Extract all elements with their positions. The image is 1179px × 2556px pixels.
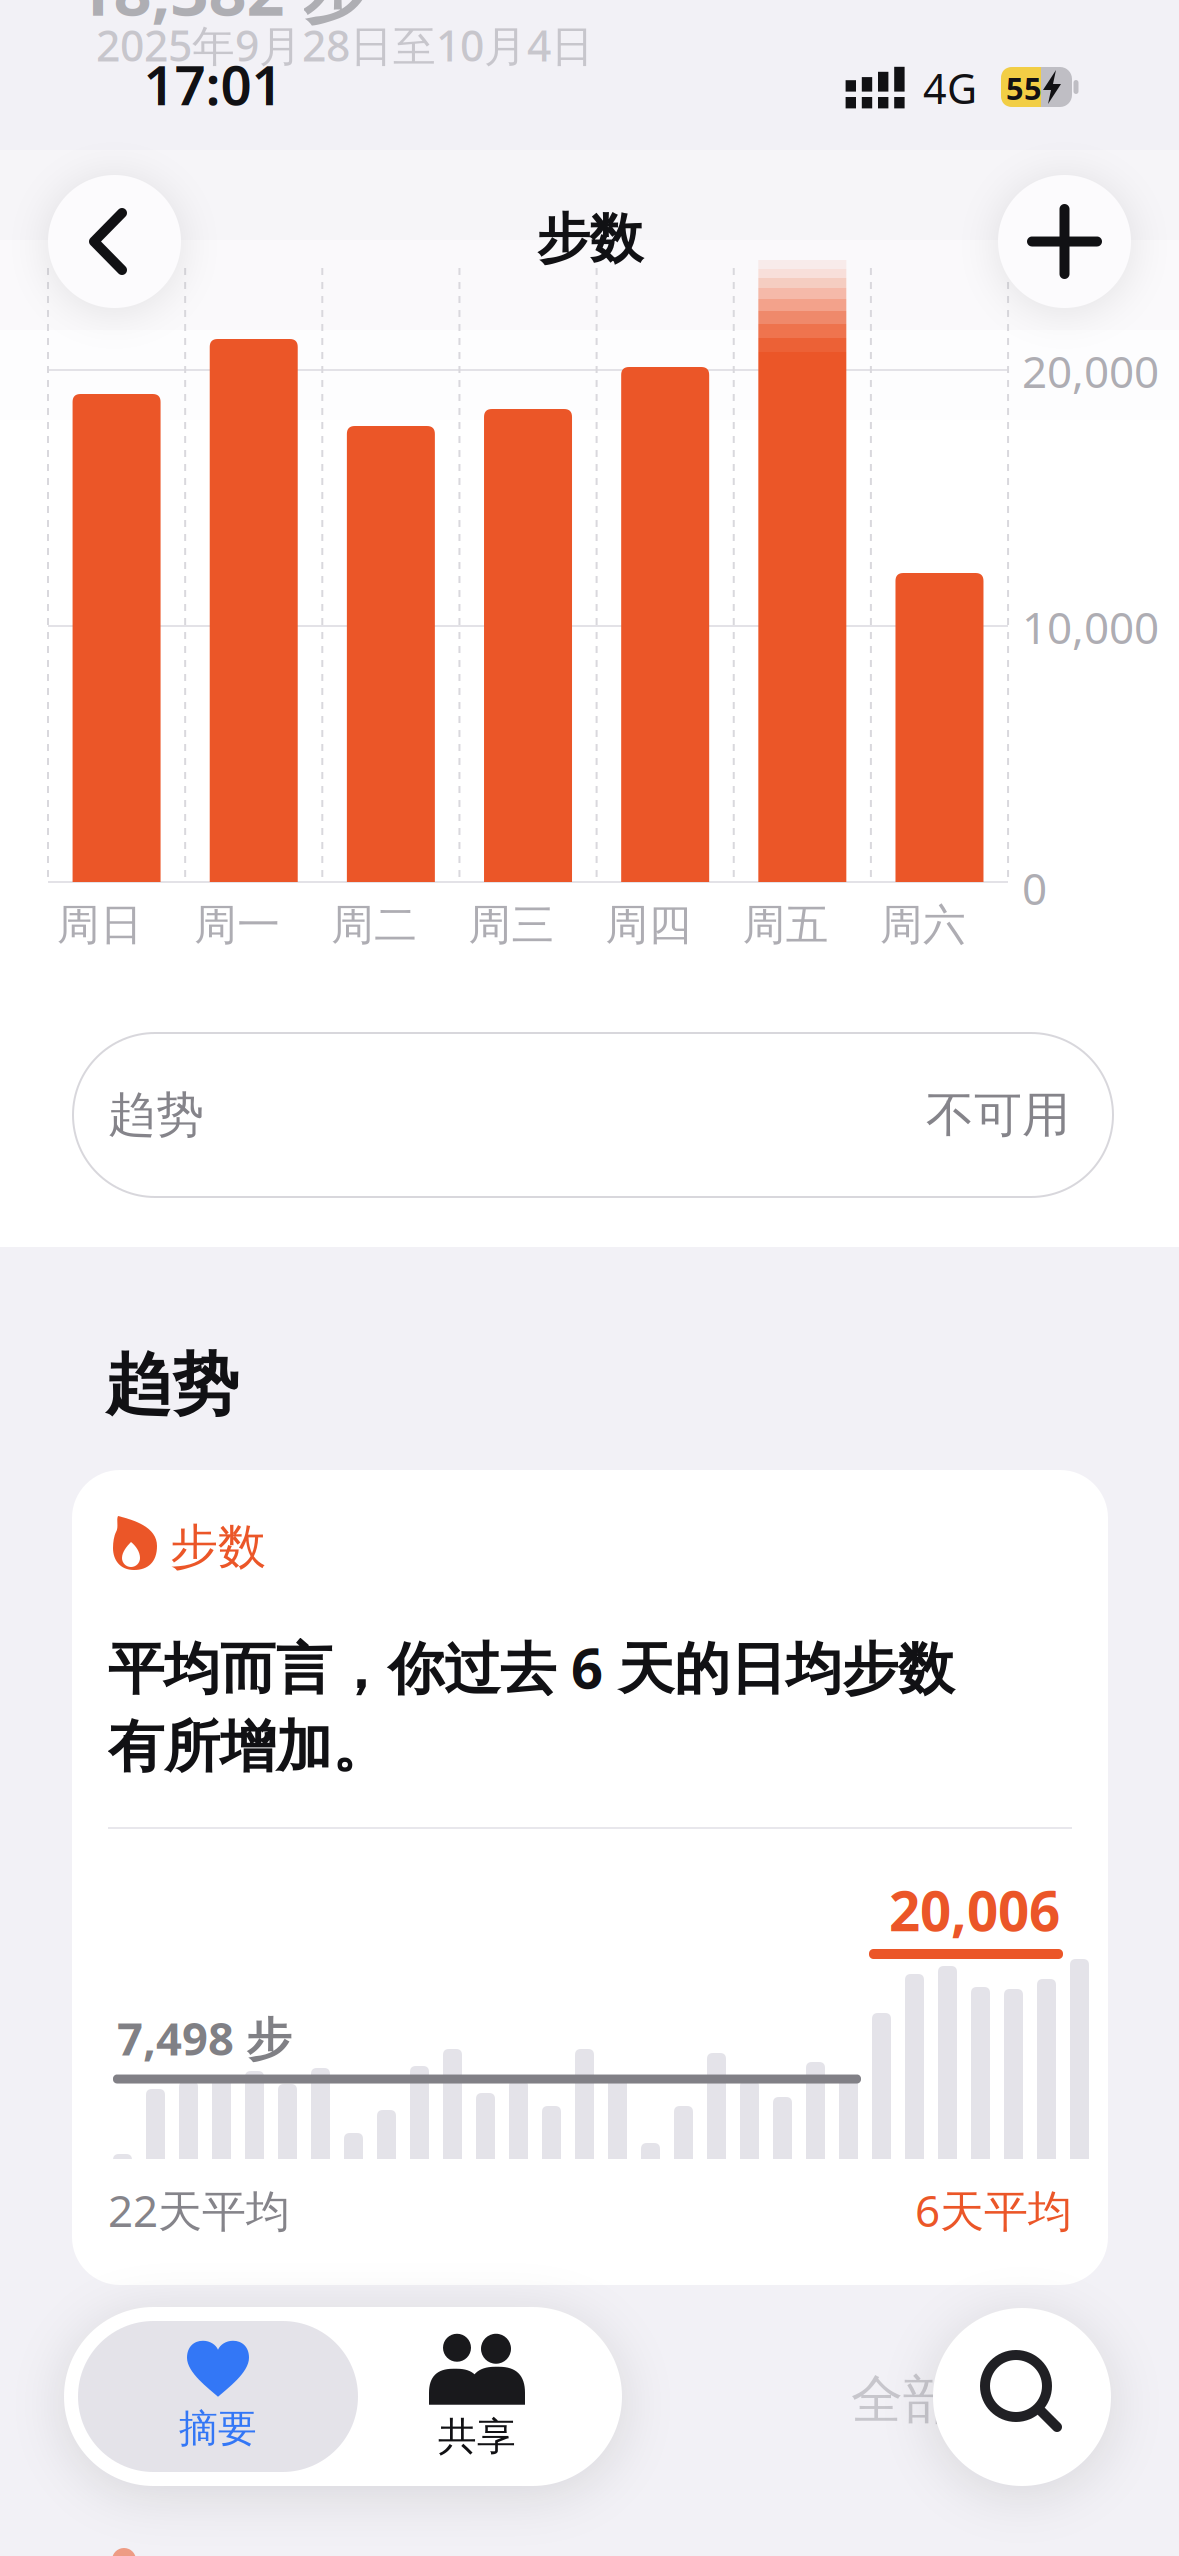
staticText: 共享 [438,2413,516,2460]
staticText: 6天平均 [915,2181,1072,2239]
staticText: 55 [1006,68,1042,108]
staticText: 步数 [170,1517,266,1576]
button[interactable]: 添加数据 [998,175,1131,308]
button[interactable]: 搜索 [933,2308,1111,2486]
staticText: 平均而言，你过去 6 天的日均步数 [108,1630,954,1704]
button[interactable]: 共享 [352,2321,602,2472]
staticText: 7,498 步 [117,2008,291,2068]
staticText: 0 [1022,859,1047,917]
staticText: 周一 [194,899,280,951]
button[interactable]: 返回 [48,175,181,308]
staticText: 17:01 [143,48,282,120]
staticText: 20,000 [1022,342,1159,400]
staticText: 2025年9月28日至10月4日 [96,17,594,73]
staticText: 20,006 [889,1874,1060,1946]
staticText: 周四 [606,899,692,951]
staticText: 趋势 [108,1085,204,1144]
staticText: 趋势 [105,1344,239,1426]
button[interactable]: 摘要 [78,2321,358,2472]
staticText: 摘要 [179,2405,257,2452]
staticText: 全部 [851,2368,955,2432]
staticText: 周二 [331,899,417,951]
staticText: 步数 [536,206,642,272]
button[interactable]: 趋势 [72,1032,1114,1198]
staticText: 周日 [57,899,143,951]
staticText: 不可用 [926,1085,1070,1144]
staticText: 周六 [880,899,966,951]
staticText: 18,382 步 [75,0,368,34]
staticText: 有所增加。 [108,1713,388,1781]
staticText: 周三 [468,899,554,951]
staticText: 4G [923,61,977,115]
staticText: 周五 [743,899,829,951]
staticText: 22天平均 [108,2181,290,2239]
staticText: 10,000 [1022,598,1159,656]
